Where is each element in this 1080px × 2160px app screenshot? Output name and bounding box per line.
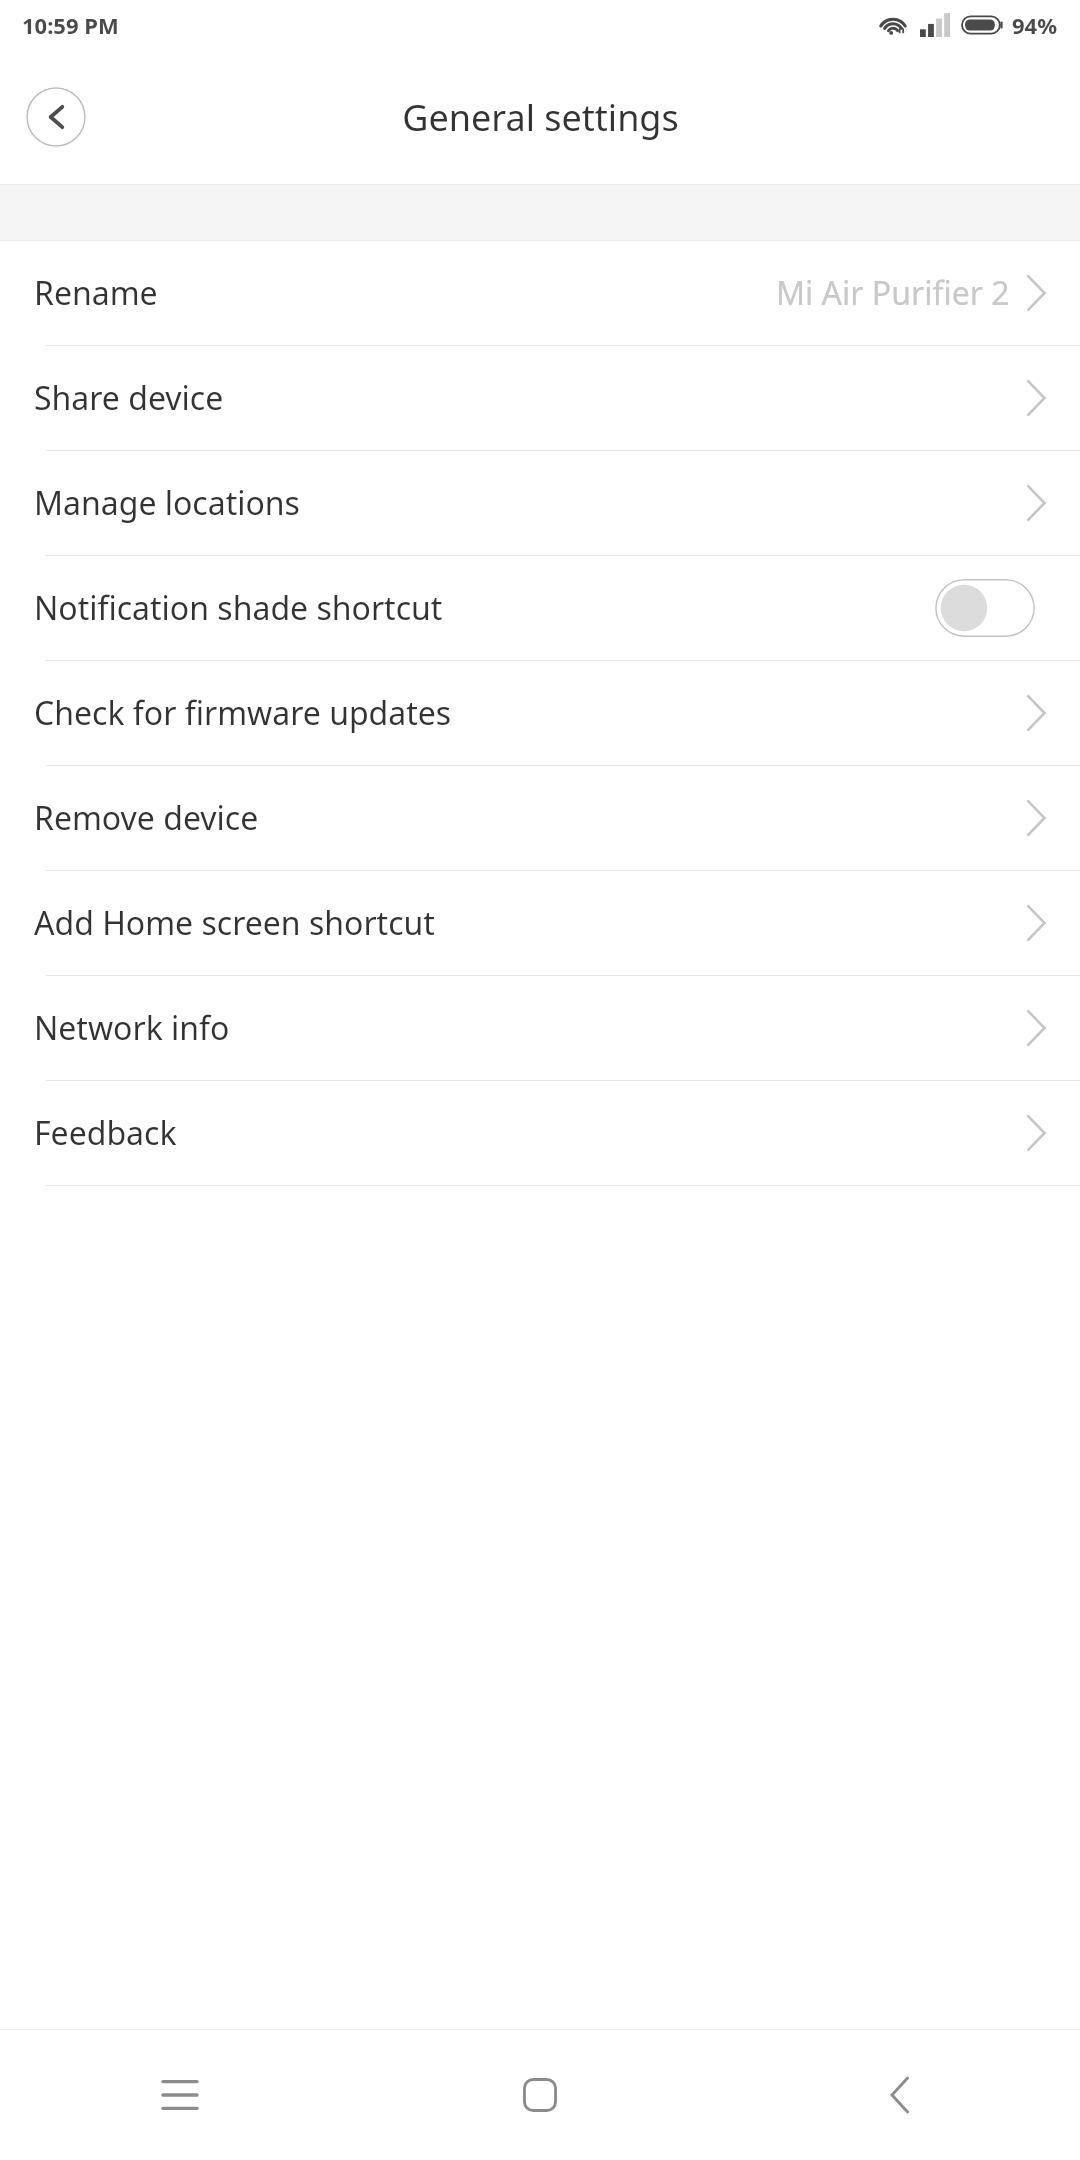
staticText: 10:59 PM (22, 10, 119, 40)
staticText: Add Home screen shortcut (34, 901, 435, 945)
button[interactable]: Recent apps (0, 2030, 360, 2160)
button[interactable]: Notification shade shortcut (0, 556, 1080, 660)
staticText: Check for firmware updates (34, 691, 452, 735)
staticText: Notification shade shortcut (34, 586, 443, 630)
button[interactable]: Back (720, 2030, 1080, 2160)
staticText: 94% (1012, 10, 1058, 40)
button[interactable]: Share device (0, 346, 1080, 450)
staticText: Feedback (34, 1111, 177, 1155)
staticText: Network info (34, 1006, 230, 1050)
button[interactable]: Check for firmware updates (0, 661, 1080, 765)
button[interactable]: Feedback (0, 1081, 1080, 1185)
staticText: Share device (34, 376, 224, 420)
staticText: Manage locations (34, 481, 300, 525)
button[interactable]: Home (360, 2030, 720, 2160)
button[interactable]: Add Home screen shortcut (0, 871, 1080, 975)
staticText: Remove device (34, 796, 259, 840)
staticText: General settings (402, 93, 679, 142)
button[interactable]: Remove device (0, 766, 1080, 870)
button[interactable]: Back (26, 87, 86, 147)
button[interactable]: Rename (0, 241, 1080, 345)
button[interactable]: Network info (0, 976, 1080, 1080)
staticText: Mi Air Purifier 2 (776, 271, 1010, 315)
button[interactable]: Notification shade shortcut toggle (935, 579, 1035, 637)
staticText: Rename (34, 271, 158, 315)
button[interactable]: Manage locations (0, 451, 1080, 555)
